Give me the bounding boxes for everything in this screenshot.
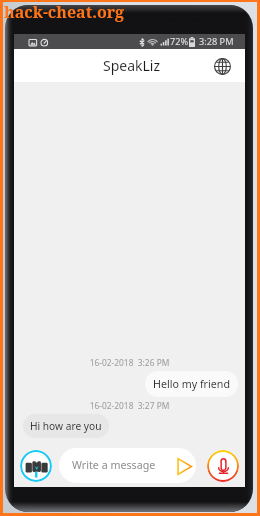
button[interactable]: Write a message [59,448,196,483]
staticText: hack-cheat.org [4,1,125,23]
staticText: 72% [170,35,189,48]
button[interactable]: SpeakLiz logo [20,450,52,482]
staticText: Hello my friend [153,377,230,392]
staticText: Write a message [72,458,156,473]
staticText: 16-02-2018 3:27 PM [14,400,245,411]
staticText: Hi how are you [30,419,102,433]
button[interactable]: Send [175,456,193,476]
staticText: 16-02-2018 3:26 PM [14,357,245,368]
button[interactable]: Voice input [207,450,239,482]
button[interactable]: Change language [210,54,234,78]
button[interactable]: Hi how are you [23,414,109,438]
staticText: SpeakLiz [103,56,161,75]
button[interactable]: Hello my friend [145,371,238,397]
staticText: 3:28 PM [199,35,234,48]
